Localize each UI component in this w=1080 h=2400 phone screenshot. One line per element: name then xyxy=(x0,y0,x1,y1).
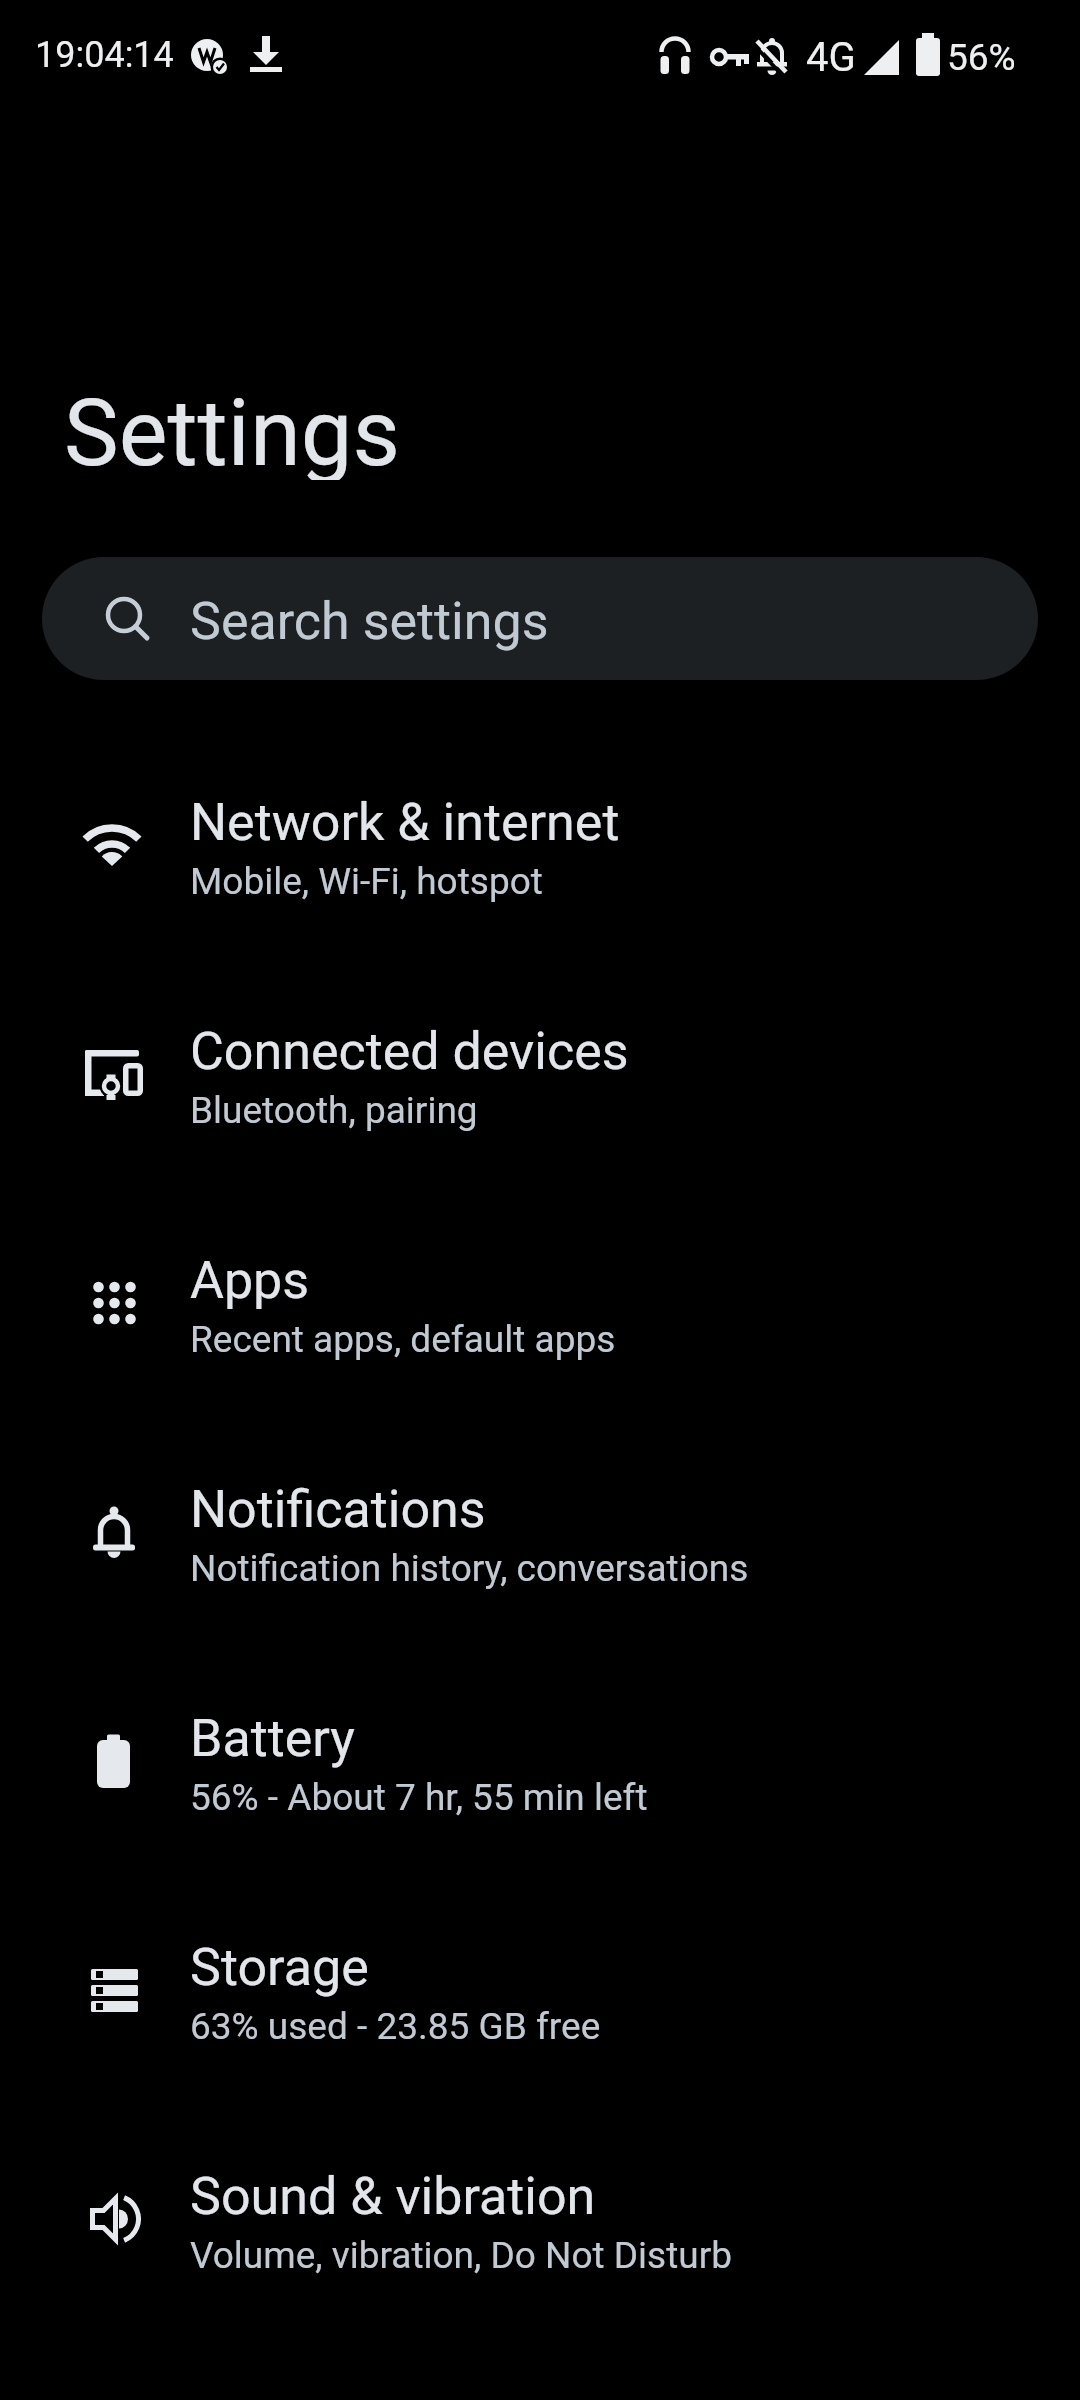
staticText: Sound & vibration xyxy=(190,2166,596,2227)
staticText: Connected devices xyxy=(190,1021,629,1082)
staticText: 19:04:14 xyxy=(35,34,174,76)
staticText: Bluetooth, pairing xyxy=(190,1089,478,1132)
staticText: Settings xyxy=(64,380,400,480)
staticText: Volume, vibration, Do Not Disturb xyxy=(190,2234,733,2277)
staticText: Mobile, Wi-Fi, hotspot xyxy=(190,860,543,903)
staticText: 4G xyxy=(806,34,856,81)
staticText: Battery xyxy=(190,1708,355,1769)
staticText: Notifications xyxy=(190,1479,486,1540)
staticText: Network & internet xyxy=(190,792,620,853)
staticText: Recent apps, default apps xyxy=(190,1318,616,1361)
staticText: Notification history, conversations xyxy=(190,1547,749,1590)
staticText: 63% used - 23.85 GB free xyxy=(190,2005,601,2048)
staticText: Storage xyxy=(190,1937,369,1998)
staticText: 56% xyxy=(947,36,1016,79)
staticText: Apps xyxy=(190,1250,310,1311)
staticText: Search settings xyxy=(190,591,549,652)
staticText: 56% - About 7 hr, 55 min left xyxy=(190,1776,648,1819)
